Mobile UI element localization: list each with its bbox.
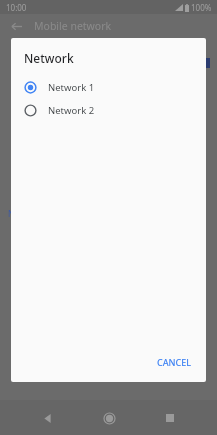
- button[interactable]: Home: [95, 404, 123, 432]
- staticText: Mobile network: [34, 19, 112, 33]
- staticText: Network: [24, 50, 74, 66]
- button[interactable]: Network 2: [11, 99, 206, 122]
- staticText: N: [8, 208, 15, 219]
- button[interactable]: Network 1: [11, 76, 206, 99]
- staticText: CANCEL: [157, 356, 192, 368]
- button[interactable]: Back: [7, 17, 25, 35]
- button[interactable]: Back: [33, 404, 61, 432]
- staticText: 100%: [191, 2, 212, 13]
- staticText: Network 1: [48, 81, 95, 94]
- button[interactable]: Recents: [156, 404, 184, 432]
- staticText: 10:00: [6, 2, 27, 13]
- staticText: Network 2: [48, 104, 95, 117]
- button[interactable]: CANCEL: [149, 352, 200, 372]
